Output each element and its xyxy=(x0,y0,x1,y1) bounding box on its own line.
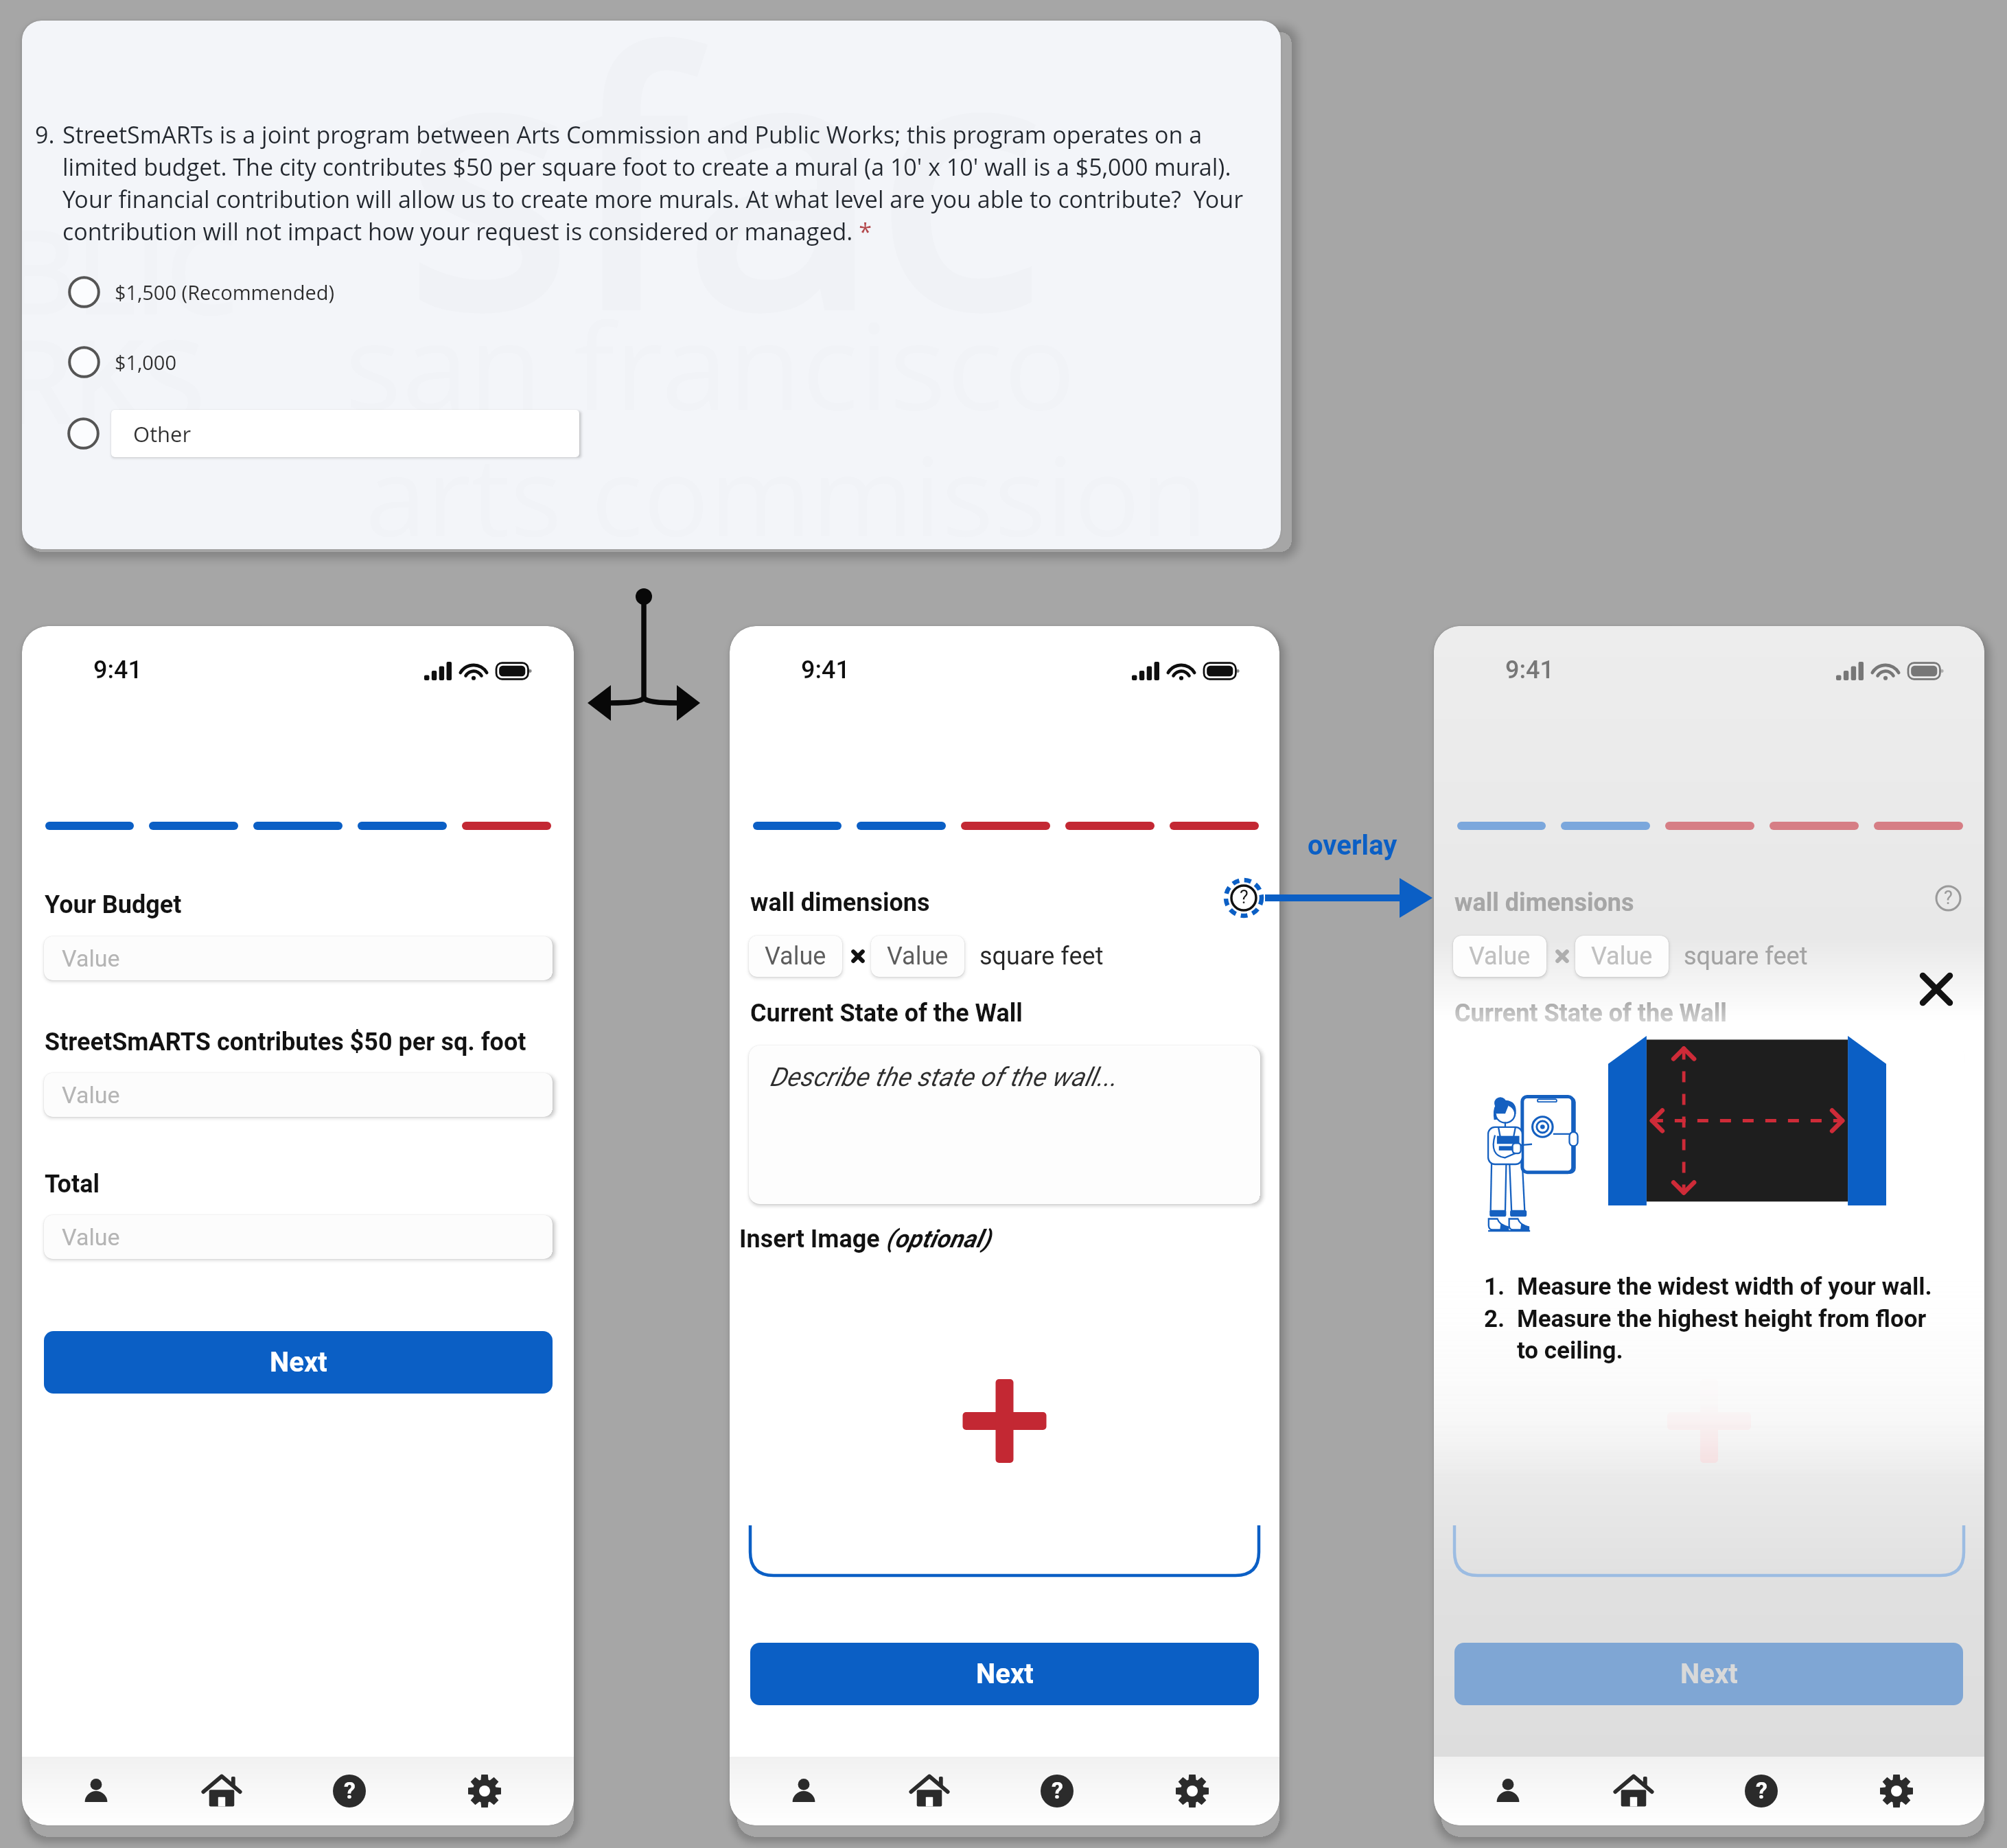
staticText: ? xyxy=(1240,886,1249,908)
button[interactable]: Describe the state of the wall... xyxy=(749,1046,1260,1204)
staticText: Measure the highest height from floor to… xyxy=(1517,1305,1927,1364)
button[interactable]: $1,000 xyxy=(68,341,177,382)
button[interactable]: Value xyxy=(1453,936,1546,977)
button[interactable]: Next xyxy=(44,1331,553,1394)
button[interactable]: Value xyxy=(44,936,553,980)
staticText: arts commission xyxy=(365,419,1208,549)
staticText: Total xyxy=(45,1170,100,1199)
button[interactable]: Help xyxy=(318,1757,380,1825)
staticText: wall dimensions xyxy=(750,888,930,917)
button[interactable]: Help xyxy=(1026,1757,1088,1825)
staticText: 9. xyxy=(35,119,55,150)
staticText: Insert Image (optional) xyxy=(1443,1225,1695,1254)
staticText: san francisco xyxy=(345,281,1076,445)
button[interactable]: Settings xyxy=(454,1757,515,1825)
staticText: 2. xyxy=(1484,1305,1517,1333)
staticText: wall dimensions xyxy=(1454,888,1634,917)
button[interactable]: Profile xyxy=(773,1757,835,1825)
staticText: ? xyxy=(1240,887,1249,909)
button[interactable]: Describe the state of the wall... xyxy=(1453,1046,1964,1204)
staticText: Next xyxy=(270,1346,327,1378)
button[interactable]: Profile xyxy=(65,1757,127,1825)
staticText: Other xyxy=(133,419,192,448)
staticText: Value xyxy=(62,945,120,972)
staticText: 1. xyxy=(1484,1273,1517,1301)
button[interactable]: Home xyxy=(1603,1757,1664,1825)
staticText: Value xyxy=(62,1223,120,1251)
staticText: Value xyxy=(765,942,826,971)
button[interactable]: $1,500 (Recommended) xyxy=(68,271,335,312)
staticText: Next xyxy=(976,1658,1034,1690)
button[interactable]: Value xyxy=(44,1073,553,1117)
staticText: Value xyxy=(62,1081,120,1109)
button[interactable]: Value xyxy=(749,936,842,977)
staticText: Measure the widest width of your wall. xyxy=(1517,1273,1932,1301)
staticText: $1,500 (Recommended) xyxy=(115,279,335,305)
staticText: sfac xyxy=(406,21,1041,406)
staticText: square feet xyxy=(979,942,1104,971)
staticText: StreetSmARTS contributes $50 per sq. foo… xyxy=(45,1028,526,1056)
button[interactable]: Settings xyxy=(1161,1757,1223,1825)
button[interactable]: Close xyxy=(1916,969,1956,1009)
staticText: Insert Image (optional) xyxy=(739,1225,991,1254)
staticText: $1,000 xyxy=(115,349,177,376)
button[interactable]: Home xyxy=(191,1757,253,1825)
button[interactable]: Help xyxy=(1730,1757,1792,1825)
staticText: Next xyxy=(1680,1658,1738,1690)
staticText: ? xyxy=(344,1777,356,1804)
staticText: square feet xyxy=(1684,942,1808,971)
button[interactable]: Help xyxy=(1231,885,1257,912)
staticText: Describe the state of the wall... xyxy=(1474,1062,1821,1093)
staticText: BLIC xyxy=(22,192,238,347)
staticText: Current State of the Wall xyxy=(1454,999,1727,1028)
button[interactable]: Settings xyxy=(1866,1757,1927,1825)
button[interactable]: Value xyxy=(44,1215,553,1259)
staticText: Value xyxy=(1591,942,1653,971)
staticText: Current State of the Wall xyxy=(750,999,1023,1028)
staticText: Value xyxy=(887,942,949,971)
staticText: Your Budget xyxy=(45,890,182,919)
button[interactable]: Help xyxy=(1221,875,1266,921)
button[interactable]: Next xyxy=(750,1643,1259,1705)
staticText: ? xyxy=(1944,887,1953,909)
button[interactable]: Other xyxy=(111,410,579,457)
staticText: ? xyxy=(1756,1777,1767,1804)
staticText: 9:41 xyxy=(801,656,850,684)
staticText: Describe the state of the wall... xyxy=(769,1062,1117,1093)
staticText: StreetSmARTs is a joint program between … xyxy=(62,119,1268,247)
button[interactable]: Next xyxy=(1454,1643,1963,1705)
button[interactable]: Home xyxy=(898,1757,960,1825)
staticText: Value xyxy=(1469,942,1531,971)
staticText: 9:41 xyxy=(93,656,142,684)
staticText: RKS xyxy=(22,302,205,457)
button[interactable]: Value xyxy=(871,936,964,977)
button[interactable]: Profile xyxy=(1477,1757,1539,1825)
staticText: overlay xyxy=(1308,829,1397,862)
staticText: 9:41 xyxy=(1505,656,1554,684)
staticText: ? xyxy=(1052,1777,1063,1804)
button[interactable]: Value xyxy=(1575,936,1669,977)
button[interactable] xyxy=(67,417,100,450)
